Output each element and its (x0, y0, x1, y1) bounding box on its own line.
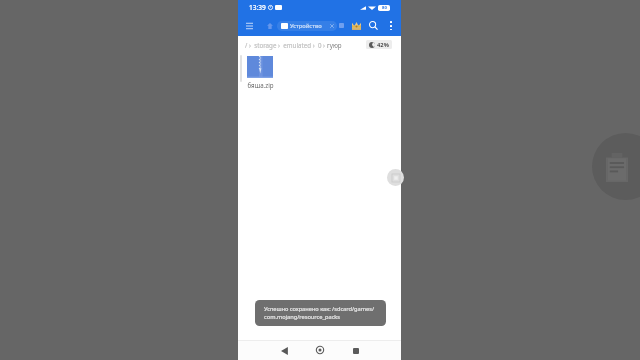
staticText: 42% (377, 41, 389, 49)
button[interactable]: Home (310, 340, 330, 359)
button[interactable]: Успешно сохранено как: /sdcard/games/ co… (255, 300, 386, 326)
button[interactable]: Back (274, 341, 294, 360)
staticText: 13:39 (249, 3, 266, 12)
button[interactable]: Menu (243, 19, 256, 32)
button[interactable]: More options (386, 21, 395, 30)
button[interactable]: 42% (366, 40, 392, 49)
staticText: / › storage › emulated › 0 › (245, 41, 327, 49)
button[interactable]: View mode (339, 23, 344, 28)
staticText: гуюр (327, 41, 342, 49)
button[interactable]: Quick action (387, 169, 404, 186)
staticText: 80 (382, 5, 387, 11)
button[interactable]: Premium (350, 20, 362, 32)
button[interactable]: Recents (346, 341, 366, 360)
button[interactable]: Home (265, 21, 275, 31)
button[interactable]: Search (368, 20, 379, 31)
staticText: бяша.zip (247, 81, 274, 89)
button[interactable]: бяша.zip (243, 56, 277, 89)
button[interactable]: Устройство (277, 21, 337, 31)
staticText: Устройство (290, 22, 322, 30)
staticText: Успешно сохранено как: /sdcard/games/ co… (264, 305, 375, 321)
